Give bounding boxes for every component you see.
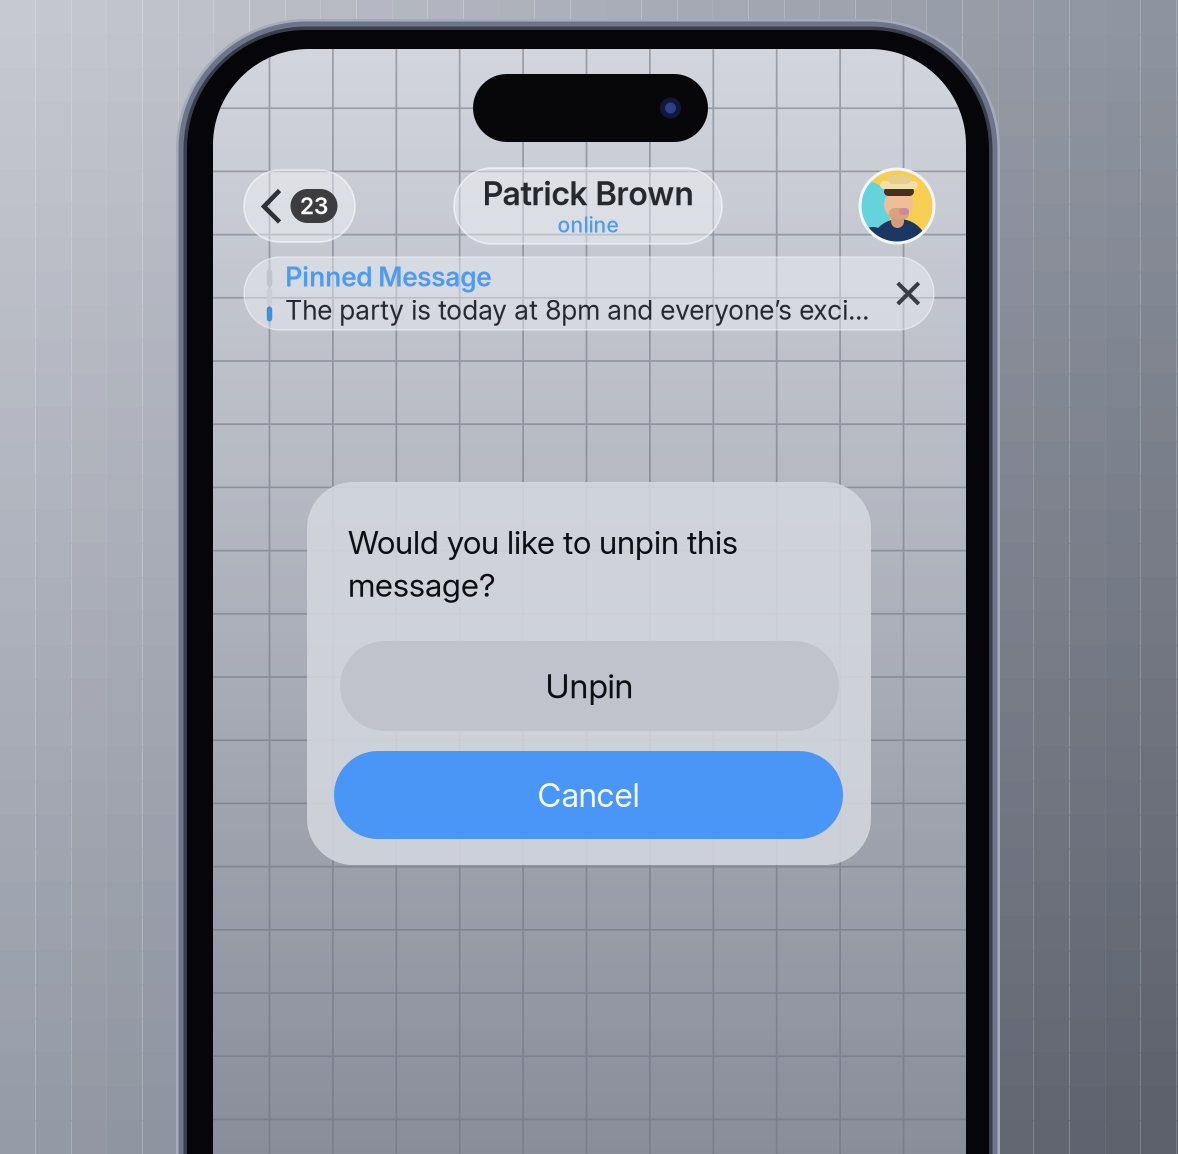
button[interactable]: Patrick Brown (454, 168, 722, 244)
staticText: Pinned Message (285, 261, 491, 293)
button[interactable]: Cancel (334, 751, 843, 839)
staticText: Cancel (537, 775, 639, 815)
staticText: online (557, 212, 618, 237)
button[interactable]: Unpin (340, 641, 839, 731)
staticText: Patrick Brown (482, 173, 693, 213)
staticText: message? (348, 566, 496, 604)
staticText: Unpin (545, 666, 633, 706)
button[interactable]: 23 (244, 170, 355, 242)
staticText: The party is today at 8pm and everyone’s… (285, 294, 869, 326)
button[interactable]: Patrick Brown profile (860, 169, 934, 243)
staticText: 23 (300, 192, 328, 220)
staticText: Would you like to unpin this (348, 523, 738, 562)
button[interactable]: Dismiss pinned message (877, 257, 939, 330)
